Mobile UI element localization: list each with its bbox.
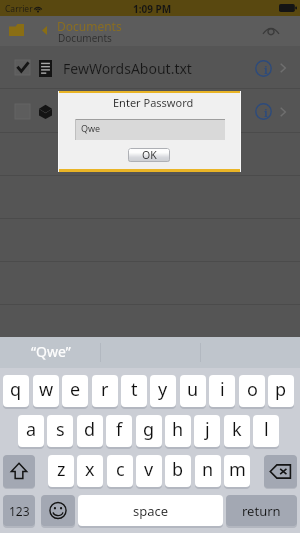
button[interactable] bbox=[0, 133, 300, 176]
button[interactable]: Backspace bbox=[264, 455, 297, 488]
button[interactable]: Qwe bbox=[75, 119, 225, 140]
button[interactable]: m bbox=[224, 455, 250, 487]
staticText: c bbox=[116, 457, 125, 482]
staticText: r bbox=[101, 377, 109, 402]
button[interactable]: s bbox=[47, 415, 73, 447]
button[interactable]: Back bbox=[42, 26, 47, 35]
staticText: 123 bbox=[9, 503, 30, 519]
staticText: v bbox=[144, 457, 154, 482]
staticText: h bbox=[172, 417, 184, 442]
staticText: n bbox=[202, 457, 214, 482]
button[interactable]: d bbox=[77, 415, 103, 447]
staticText: a bbox=[26, 417, 37, 442]
staticText: f bbox=[116, 417, 123, 442]
button[interactable]: t bbox=[121, 375, 147, 407]
button[interactable]: Preview bbox=[263, 26, 279, 36]
button[interactable]: b bbox=[165, 455, 191, 487]
button[interactable]: n bbox=[195, 455, 221, 487]
staticText: OK bbox=[142, 148, 157, 162]
staticText: s bbox=[56, 417, 65, 442]
staticText: Documents bbox=[58, 31, 112, 45]
staticText: y bbox=[158, 377, 168, 402]
staticText: z bbox=[57, 457, 66, 482]
button[interactable]: space bbox=[78, 495, 223, 526]
staticText: m bbox=[229, 457, 246, 482]
staticText: w bbox=[39, 377, 54, 402]
button[interactable]: x bbox=[77, 455, 103, 487]
staticText: q bbox=[10, 377, 22, 402]
button[interactable]: j bbox=[194, 415, 220, 447]
button[interactable]: c bbox=[107, 455, 133, 487]
button[interactable]: Documents bbox=[57, 18, 122, 34]
staticText: p bbox=[275, 377, 287, 402]
staticText: g bbox=[143, 417, 155, 442]
button[interactable] bbox=[0, 46, 300, 89]
staticText: Carrier bbox=[5, 3, 33, 15]
button[interactable]: g bbox=[136, 415, 162, 447]
button[interactable]: Shift bbox=[3, 455, 35, 488]
staticText: i bbox=[220, 377, 225, 402]
staticText: e bbox=[70, 377, 81, 402]
staticText: “Qwe” bbox=[31, 342, 71, 361]
button[interactable]: Info bbox=[255, 103, 272, 120]
button[interactable]: y bbox=[150, 375, 176, 407]
staticText: FewWordsAbout.txt bbox=[63, 59, 192, 78]
button[interactable]: o bbox=[239, 375, 265, 407]
staticText: i bbox=[264, 62, 268, 77]
button[interactable]: OK bbox=[128, 148, 170, 162]
staticText: return bbox=[242, 502, 281, 520]
button[interactable]: Folder bbox=[9, 24, 24, 36]
button[interactable]: q bbox=[3, 375, 29, 407]
staticText: 1:09 PM bbox=[133, 2, 172, 16]
button[interactable]: Info bbox=[255, 60, 272, 77]
staticText: o bbox=[247, 377, 258, 402]
button[interactable]: u bbox=[180, 375, 206, 407]
staticText: Enter Password bbox=[113, 95, 194, 110]
button[interactable]: r bbox=[92, 375, 118, 407]
staticText: b bbox=[172, 457, 184, 482]
button[interactable]: Emoji bbox=[41, 495, 75, 526]
staticText: d bbox=[84, 417, 96, 442]
staticText: t bbox=[131, 377, 138, 402]
button[interactable]: 123 bbox=[3, 495, 35, 526]
button[interactable]: z bbox=[48, 455, 74, 487]
button[interactable]: w bbox=[33, 375, 59, 407]
button[interactable]: p bbox=[268, 375, 294, 407]
button[interactable] bbox=[0, 305, 300, 348]
button[interactable]: l bbox=[253, 415, 279, 447]
staticText: u bbox=[187, 377, 199, 402]
staticText: j bbox=[205, 417, 210, 442]
staticText: k bbox=[232, 417, 242, 442]
staticText: Qwe bbox=[81, 122, 101, 134]
button[interactable] bbox=[0, 89, 300, 132]
button[interactable]: a bbox=[18, 415, 44, 447]
button[interactable]: v bbox=[136, 455, 162, 487]
button[interactable]: f bbox=[106, 415, 132, 447]
staticText: i bbox=[264, 105, 268, 120]
button[interactable]: k bbox=[224, 415, 250, 447]
staticText: space bbox=[133, 502, 169, 520]
button[interactable]: h bbox=[165, 415, 191, 447]
button[interactable]: e bbox=[62, 375, 88, 407]
staticText: x bbox=[85, 457, 95, 482]
staticText: l bbox=[264, 417, 269, 442]
button[interactable]: i bbox=[209, 375, 235, 407]
button[interactable]: return bbox=[226, 495, 297, 526]
